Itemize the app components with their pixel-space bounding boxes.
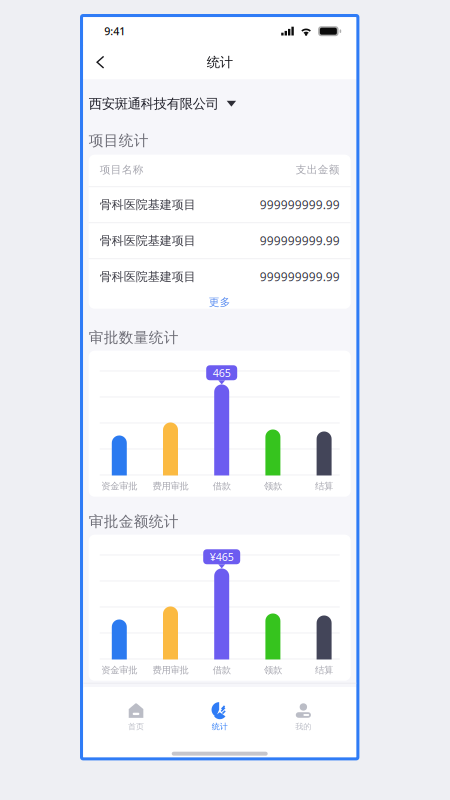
staticText: 骨科医院基建项目 <box>100 269 196 284</box>
staticText: 项目统计 <box>89 132 149 150</box>
staticText: 借款 <box>213 480 231 492</box>
staticText: 首页 <box>128 722 144 731</box>
staticText: ¥465 <box>210 550 234 564</box>
staticText: 我的 <box>295 722 311 731</box>
staticText: 支出金额 <box>296 163 340 176</box>
button[interactable]: 西安斑通科技有限公司 <box>83 78 356 125</box>
staticText: 999999999.99 <box>260 269 340 285</box>
staticText: 资金审批 <box>101 664 137 676</box>
staticText: 审批数量统计 <box>89 329 179 347</box>
staticText: 更多 <box>209 296 231 309</box>
button[interactable]: Back <box>83 46 120 79</box>
staticText: 骨科医院基建项目 <box>100 233 196 248</box>
staticText: 结算 <box>315 664 333 676</box>
staticText: 审批金额统计 <box>89 513 179 531</box>
staticText: 项目名称 <box>100 163 144 176</box>
button[interactable]: 首页 <box>94 684 178 738</box>
staticText: 费用审批 <box>152 480 188 492</box>
staticText: 费用审批 <box>152 664 188 676</box>
staticText: 借款 <box>213 664 231 676</box>
staticText: 465 <box>213 366 231 380</box>
button[interactable]: 我的 <box>261 684 345 738</box>
staticText: 统计 <box>207 54 233 70</box>
staticText: 9:41 <box>104 24 125 38</box>
staticText: 结算 <box>315 480 333 492</box>
button[interactable]: 统计 <box>178 684 262 738</box>
button[interactable]: 更多 <box>89 294 351 310</box>
staticText: 资金审批 <box>101 480 137 492</box>
staticText: 领款 <box>264 664 282 676</box>
staticText: 999999999.99 <box>260 197 340 213</box>
staticText: 西安斑通科技有限公司 <box>89 95 219 112</box>
staticText: 999999999.99 <box>260 233 340 249</box>
staticText: 骨科医院基建项目 <box>100 197 196 212</box>
staticText: 统计 <box>212 722 228 731</box>
staticText: 领款 <box>264 480 282 492</box>
